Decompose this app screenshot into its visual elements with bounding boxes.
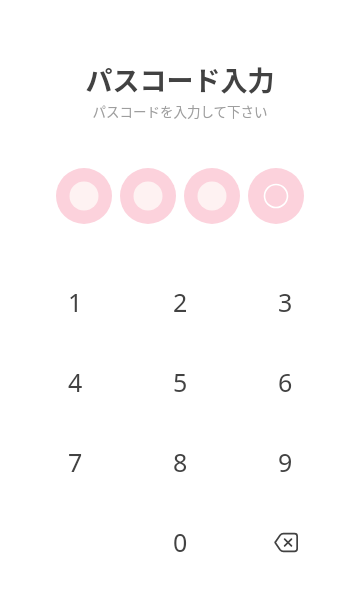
button[interactable]: 2: [128, 262, 233, 342]
staticText: パスコードを入力して下さい: [0, 101, 360, 121]
staticText: パスコード入力: [0, 60, 360, 99]
button[interactable]: 7: [22, 422, 128, 502]
staticText: 8: [173, 445, 188, 479]
button[interactable]: 6: [233, 342, 338, 422]
button[interactable]: 8: [128, 422, 233, 502]
staticText: 9: [278, 445, 293, 479]
staticText: 3: [278, 285, 293, 319]
other: Backspace: [274, 530, 298, 554]
staticText: 0: [173, 525, 188, 559]
button[interactable]: 1: [22, 262, 128, 342]
button[interactable]: 9: [233, 422, 338, 502]
button[interactable]: 3: [233, 262, 338, 342]
staticText: 4: [68, 365, 83, 399]
button[interactable]: 5: [128, 342, 233, 422]
staticText: 1: [68, 285, 83, 319]
staticText: 5: [173, 365, 188, 399]
button[interactable]: Backspace: [233, 502, 338, 582]
staticText: 2: [173, 285, 188, 319]
staticText: 7: [68, 445, 83, 479]
button[interactable]: 0: [128, 502, 233, 582]
button[interactable]: 4: [22, 342, 128, 422]
staticText: 6: [278, 365, 293, 399]
